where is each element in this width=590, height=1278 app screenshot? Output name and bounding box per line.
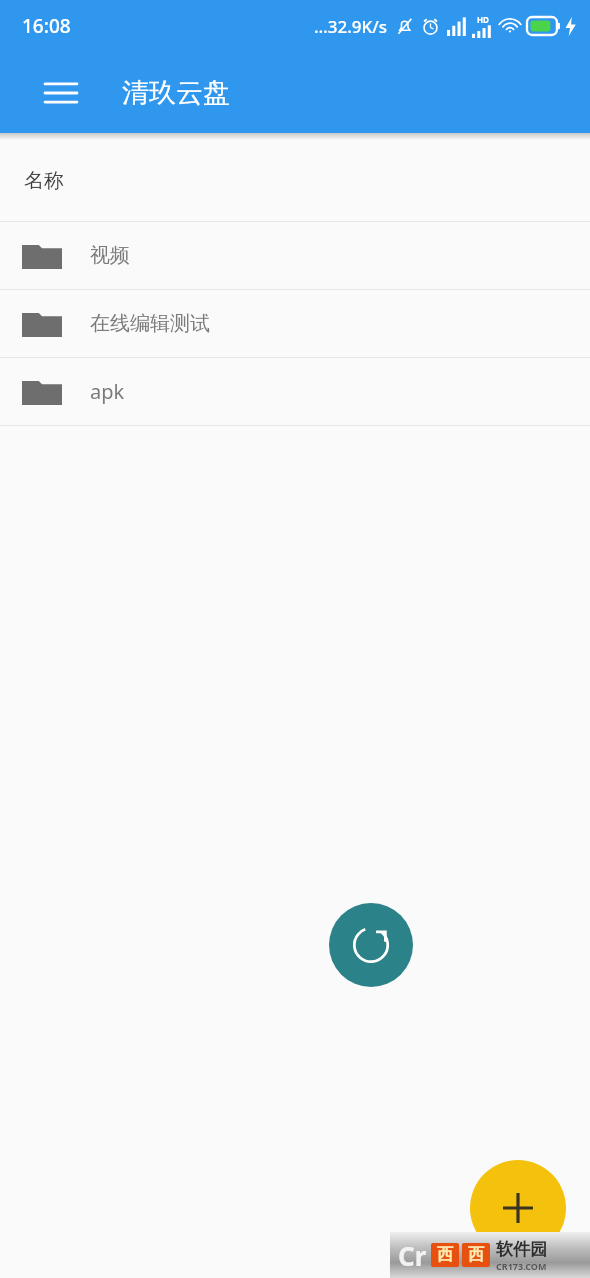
staticText: HD	[477, 14, 489, 25]
button[interactable]: 视频	[0, 222, 590, 289]
staticText: 在线编辑测试	[90, 311, 210, 336]
button[interactable]: Refresh	[329, 903, 413, 987]
staticText: 视频	[90, 243, 130, 268]
staticText: …32.9K/s	[314, 15, 388, 38]
button[interactable]: Add	[470, 1160, 566, 1256]
staticText: 清玖云盘	[122, 76, 230, 110]
staticText: 名称	[24, 168, 64, 193]
staticText: CR173.COM	[496, 1260, 547, 1272]
button[interactable]: 在线编辑测试	[0, 290, 590, 357]
button[interactable]: Open navigation menu	[30, 62, 92, 124]
button[interactable]: apk	[0, 358, 590, 425]
staticText: 软件园	[496, 1239, 547, 1260]
staticText: 16:08	[22, 13, 71, 39]
staticText: Cr	[398, 1238, 427, 1273]
staticText: apk	[90, 378, 125, 405]
staticText: 西	[468, 1245, 484, 1265]
staticText: 西	[437, 1245, 453, 1265]
